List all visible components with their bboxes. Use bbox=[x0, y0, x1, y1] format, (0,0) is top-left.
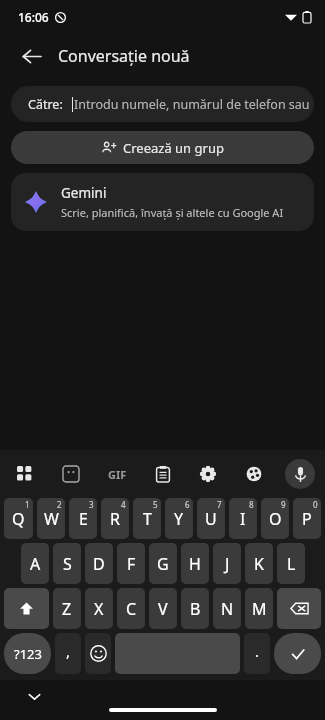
staticText: 0 bbox=[313, 499, 318, 510]
button[interactable]: Settings bbox=[193, 459, 223, 489]
button[interactable]: B bbox=[181, 588, 209, 629]
staticText: Gemini bbox=[61, 184, 107, 202]
button[interactable]: ?123 bbox=[4, 633, 51, 674]
button[interactable]: I bbox=[229, 498, 257, 539]
button[interactable]: F bbox=[117, 543, 145, 584]
button[interactable]: Back bbox=[14, 39, 48, 73]
staticText: Creează un grup bbox=[123, 139, 224, 157]
button[interactable]: , bbox=[55, 633, 81, 674]
staticText: M bbox=[252, 598, 267, 620]
staticText: K bbox=[254, 553, 264, 575]
staticText: Către: bbox=[28, 96, 63, 113]
button[interactable]: S bbox=[53, 543, 81, 584]
button[interactable]: U bbox=[197, 498, 225, 539]
staticText: X bbox=[94, 598, 104, 620]
staticText: 7 bbox=[217, 499, 222, 510]
staticText: 6 bbox=[185, 499, 190, 510]
staticText: E bbox=[79, 508, 88, 530]
staticText: GIF bbox=[108, 467, 127, 482]
button[interactable]: Către: bbox=[11, 86, 314, 122]
button[interactable]: O bbox=[261, 498, 289, 539]
button[interactable]: GIF bbox=[102, 459, 132, 489]
button[interactable]: G bbox=[149, 543, 177, 584]
staticText: T bbox=[143, 508, 152, 530]
button[interactable]: E bbox=[69, 498, 97, 539]
staticText: 16:06 bbox=[18, 9, 49, 25]
button[interactable]: Y bbox=[165, 498, 193, 539]
button[interactable]: L bbox=[277, 543, 305, 584]
staticText: W bbox=[44, 508, 59, 530]
button[interactable]: M bbox=[245, 588, 273, 629]
staticText: 9 bbox=[281, 499, 286, 510]
staticText: V bbox=[158, 598, 168, 620]
staticText: C bbox=[126, 598, 137, 620]
button[interactable]: Creează un grup bbox=[11, 131, 314, 164]
button[interactable]: T bbox=[133, 498, 161, 539]
button[interactable]: V bbox=[149, 588, 177, 629]
staticText: O bbox=[269, 508, 282, 530]
button[interactable]: Q bbox=[4, 498, 33, 539]
button[interactable]: . bbox=[244, 633, 270, 674]
staticText: F bbox=[127, 553, 136, 575]
staticText: . bbox=[255, 641, 260, 661]
button[interactable]: Backspace bbox=[277, 588, 321, 629]
staticText: 1 bbox=[25, 499, 30, 510]
button[interactable]: H bbox=[181, 543, 209, 584]
staticText: 5 bbox=[153, 499, 158, 510]
button[interactable]: Apps bbox=[10, 459, 40, 489]
staticText: L bbox=[287, 553, 296, 575]
staticText: G bbox=[157, 553, 169, 575]
staticText: I bbox=[240, 508, 246, 530]
staticText: S bbox=[63, 553, 72, 575]
staticText: 3 bbox=[89, 499, 94, 510]
staticText: Introdu numele, numărul de telefon sau a… bbox=[74, 96, 314, 113]
button[interactable]: Z bbox=[53, 588, 81, 629]
button[interactable]: Emoji bbox=[85, 633, 111, 674]
button[interactable]: C bbox=[117, 588, 145, 629]
staticText: Q bbox=[12, 508, 25, 530]
button[interactable]: J bbox=[213, 543, 241, 584]
staticText: 8 bbox=[249, 499, 254, 510]
button[interactable]: Gemini bbox=[11, 173, 314, 231]
staticText: B bbox=[190, 598, 201, 620]
staticText: N bbox=[221, 598, 234, 620]
button[interactable]: X bbox=[85, 588, 113, 629]
staticText: P bbox=[302, 508, 312, 530]
staticText: ?123 bbox=[14, 645, 42, 663]
button[interactable]: Clipboard bbox=[148, 459, 178, 489]
staticText: Y bbox=[174, 508, 184, 530]
button[interactable]: A bbox=[21, 543, 49, 584]
staticText: 4 bbox=[121, 499, 126, 510]
button[interactable]: D bbox=[85, 543, 113, 584]
button[interactable]: Voice input bbox=[285, 459, 315, 489]
staticText: Z bbox=[62, 598, 72, 620]
staticText: D bbox=[93, 553, 105, 575]
staticText: A bbox=[30, 553, 41, 575]
button[interactable]: N bbox=[213, 588, 241, 629]
staticText: Scrie, planifică, învață și altele cu Go… bbox=[61, 205, 284, 220]
button[interactable]: Enter bbox=[274, 633, 321, 674]
staticText: Conversație nouă bbox=[58, 45, 190, 67]
button[interactable]: R bbox=[101, 498, 129, 539]
staticText: , bbox=[66, 641, 71, 661]
staticText: 2 bbox=[57, 499, 62, 510]
staticText: R bbox=[110, 508, 120, 530]
button[interactable]: K bbox=[245, 543, 273, 584]
button[interactable]: Themes bbox=[239, 459, 269, 489]
button[interactable]: Stickers bbox=[56, 459, 86, 489]
button[interactable]: Shift bbox=[4, 588, 49, 629]
button[interactable]: Hide keyboard bbox=[22, 684, 46, 708]
staticText: U bbox=[205, 508, 217, 530]
button[interactable]: P bbox=[293, 498, 321, 539]
staticText: H bbox=[189, 553, 201, 575]
staticText: J bbox=[225, 553, 230, 575]
button[interactable]: W bbox=[37, 498, 65, 539]
